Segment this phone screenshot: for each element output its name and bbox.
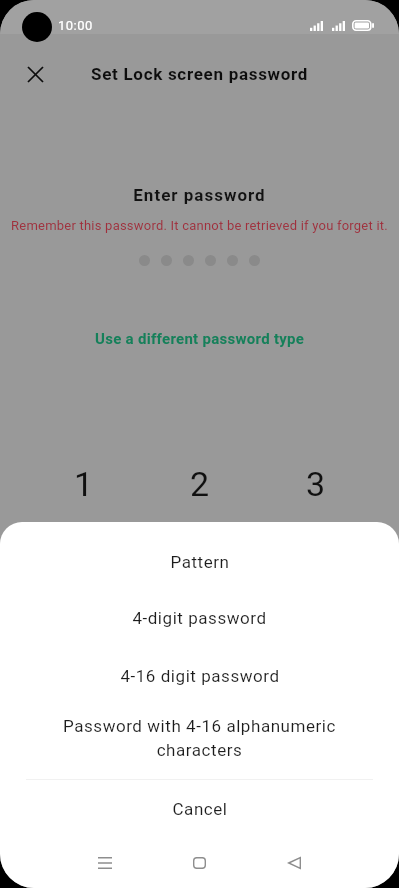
button[interactable]: Close [15, 54, 56, 95]
staticText: 3 [306, 464, 326, 502]
button[interactable]: 3 [258, 464, 374, 502]
staticText: 2 [190, 464, 210, 502]
button[interactable]: Pattern [0, 533, 399, 590]
button[interactable]: Password with 4-16 alphanumeric characte… [0, 706, 399, 769]
staticText: Pattern [170, 552, 230, 572]
button[interactable]: 4-digit password [0, 589, 399, 646]
staticText: 1 [74, 464, 94, 502]
button[interactable]: 1 [25, 464, 142, 502]
staticText: Enter password [0, 185, 399, 205]
button[interactable]: 4-16 digit password [0, 647, 399, 705]
button[interactable]: Cancel [0, 781, 399, 837]
button[interactable]: Use a different password type [0, 328, 399, 350]
button[interactable]: 2 [142, 464, 258, 502]
button[interactable]: Recent apps [57, 838, 152, 888]
staticText: Set Lock screen password [91, 64, 309, 84]
staticText: 4-digit password [132, 608, 267, 628]
staticText: 4-16 digit password [120, 666, 280, 686]
staticText: 10:00 [58, 18, 93, 33]
button[interactable]: Back [247, 838, 342, 888]
button[interactable]: Home [152, 838, 247, 888]
staticText: Password with 4-16 alphanumeric characte… [56, 716, 343, 760]
staticText: Use a different password type [95, 330, 305, 348]
staticText: Remember this password. It cannot be ret… [0, 218, 399, 233]
staticText: Cancel [172, 799, 228, 819]
